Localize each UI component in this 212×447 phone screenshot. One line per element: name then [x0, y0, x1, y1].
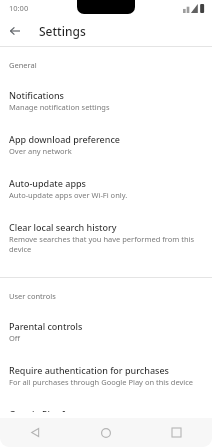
button[interactable]: Auto-update apps	[0, 171, 212, 206]
staticText: Clear local search history	[9, 221, 117, 233]
button[interactable]: Parental controls	[0, 314, 212, 349]
staticText: Off	[9, 333, 21, 343]
staticText: Remove searches that you have performed …	[9, 234, 203, 254]
staticText: App download preference	[9, 133, 120, 145]
staticText: Over any network	[9, 146, 72, 156]
button[interactable]: Back	[0, 418, 70, 447]
staticText: Parental controls	[9, 320, 83, 332]
button[interactable]: Notifications	[0, 83, 212, 118]
staticText: Manage notification settings	[9, 102, 110, 112]
staticText: User controls	[9, 291, 56, 301]
button[interactable]: App download preference	[0, 127, 212, 162]
staticText: Auto-update apps	[9, 177, 86, 189]
staticText: Google Play Instant	[9, 408, 94, 412]
button[interactable]: Google Play Instant	[0, 402, 212, 418]
button[interactable]: Back	[0, 16, 30, 46]
staticText: General	[9, 60, 37, 70]
staticText: 10:00	[9, 3, 29, 13]
button[interactable]: Clear local search history	[0, 215, 212, 260]
button[interactable]: Require authentication for purchases	[0, 358, 212, 393]
staticText: Auto-update apps over Wi-Fi only.	[9, 190, 128, 200]
button[interactable]: Recent apps	[141, 418, 212, 447]
staticText: For all purchases through Google Play on…	[9, 377, 194, 387]
staticText: Notifications	[9, 89, 64, 101]
button[interactable]: Home	[70, 418, 141, 447]
staticText: Require authentication for purchases	[9, 364, 169, 376]
staticText: Settings	[39, 23, 86, 39]
